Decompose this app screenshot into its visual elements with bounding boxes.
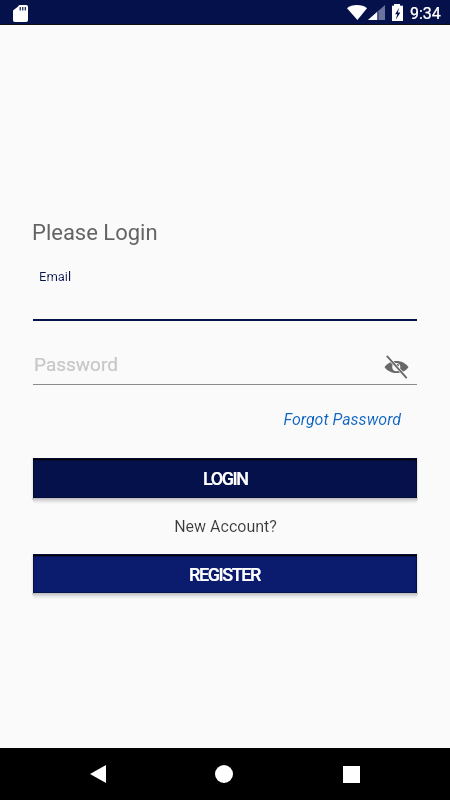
staticText: Forgot Password [201,410,401,429]
button[interactable]: Email field [33,262,417,321]
button[interactable]: Back [74,750,122,798]
staticText: LOGIN [203,468,248,489]
staticText: Password [34,353,118,375]
button[interactable]: Forgot Password [201,406,401,432]
button[interactable]: REGISTER [33,554,417,593]
button[interactable]: Recent apps [327,750,375,798]
staticText: REGISTER [189,564,261,585]
button[interactable]: LOGIN [33,458,417,498]
staticText: New Account? [174,517,277,536]
button[interactable]: Show password [378,349,414,385]
button[interactable]: Password field [33,348,373,385]
staticText: Please Login [32,220,158,246]
staticText: Email [39,269,72,284]
button[interactable]: New Account? [160,513,290,537]
staticText: 9:34 [410,4,441,23]
button[interactable]: Home [200,750,248,798]
